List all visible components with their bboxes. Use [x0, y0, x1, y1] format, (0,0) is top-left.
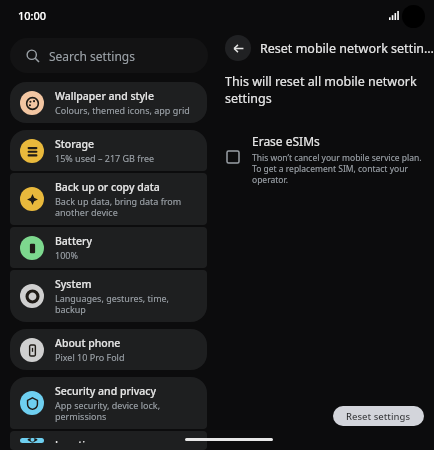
button[interactable]: Reset settings [333, 406, 424, 426]
staticText: This won’t cancel your mobile service pl… [252, 152, 424, 185]
staticText: Wallpaper and style [55, 89, 154, 103]
staticText: Back up data, bring data from another de… [55, 195, 197, 218]
staticText: Reset settings [346, 410, 411, 423]
staticText: Search settings [49, 48, 135, 64]
button[interactable]: Battery [10, 227, 207, 268]
staticText: Storage [55, 137, 94, 151]
button[interactable]: Security and privacy [10, 377, 207, 429]
button[interactable]: Back up or copy data [10, 173, 207, 225]
staticText: Reset mobile network settin… [260, 40, 434, 57]
button[interactable]: About phone [10, 329, 207, 370]
staticText: Pixel 10 Pro Fold [55, 351, 125, 363]
staticText: Colours, themed icons, app grid [55, 104, 190, 116]
staticText: Location [55, 438, 99, 443]
button[interactable]: Storage [10, 130, 207, 171]
button[interactable]: Erase eSIMs [217, 133, 434, 185]
staticText: Erase eSIMs [252, 133, 320, 149]
staticText: 10:00 [18, 8, 47, 23]
button[interactable]: Wallpaper and style [10, 82, 207, 123]
staticText: 100% [55, 249, 78, 261]
staticText: 15% used – 217 GB free [55, 152, 155, 164]
button[interactable]: Back [225, 35, 251, 61]
staticText: This will reset all mobile network setti… [225, 73, 429, 107]
staticText: Back up or copy data [55, 180, 160, 194]
button[interactable]: System [10, 270, 207, 322]
staticText: Battery [55, 234, 92, 248]
button[interactable]: Location [10, 431, 207, 450]
staticText: App security, device lock, permissions [55, 399, 197, 422]
staticText: Security and privacy [55, 384, 156, 398]
staticText: Languages, gestures, time, backup [55, 292, 197, 315]
button[interactable]: Search settings [10, 38, 208, 73]
staticText: System [55, 277, 92, 291]
staticText: About phone [55, 336, 121, 350]
